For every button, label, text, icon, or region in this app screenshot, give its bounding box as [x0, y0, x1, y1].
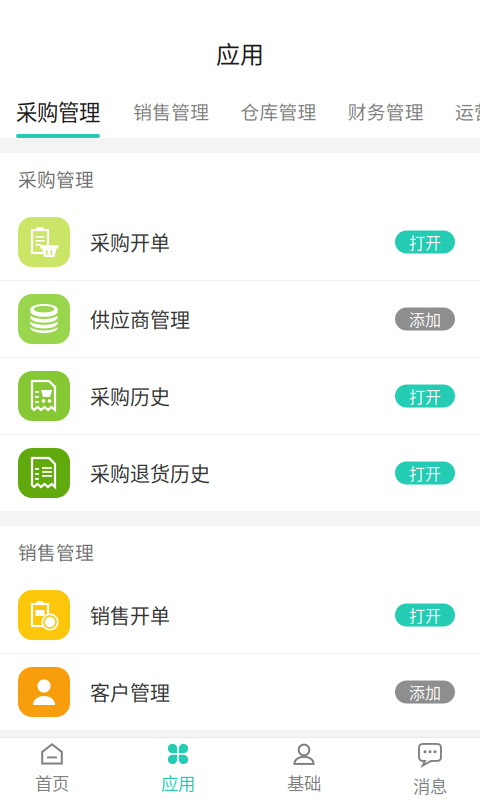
staticText: 采购管理	[16, 96, 100, 126]
staticText: 基础	[287, 770, 321, 795]
button[interactable]: 仓库管理	[238, 88, 346, 138]
staticText: 采购退货历史	[90, 458, 210, 487]
staticText: 供应商管理	[90, 304, 190, 333]
staticText: 财务管理	[348, 97, 424, 124]
staticText: 应用	[216, 36, 264, 70]
staticText: 应用	[161, 770, 195, 795]
staticText: 销售管理	[18, 538, 94, 565]
staticText: 打开	[409, 230, 441, 254]
button[interactable]: 采购开单	[0, 204, 480, 280]
staticText: 首页	[35, 770, 69, 795]
staticText: 消息	[413, 773, 447, 798]
button[interactable]: 采购历史	[0, 358, 480, 434]
button[interactable]: 销售开单	[0, 577, 480, 653]
button[interactable]: 销售管理	[131, 88, 238, 138]
staticText: 采购管理	[18, 165, 94, 192]
staticText: 销售管理	[133, 97, 209, 124]
button[interactable]: 采购退货历史	[0, 435, 480, 511]
staticText: 打开	[409, 384, 441, 408]
staticText: 采购开单	[90, 227, 170, 256]
staticText: 销售开单	[90, 600, 170, 629]
staticText: 运营管理	[455, 97, 480, 124]
staticText: 客户管理	[90, 677, 170, 706]
staticText: 仓库管理	[240, 97, 316, 124]
button[interactable]: 财务管理	[346, 88, 453, 138]
button[interactable]: 基础	[241, 738, 367, 800]
button[interactable]: 运营管理	[453, 88, 480, 138]
button[interactable]: 采购管理	[16, 88, 131, 138]
staticText: 打开	[409, 461, 441, 485]
staticText: 打开	[409, 603, 441, 627]
button[interactable]: 应用	[115, 738, 241, 800]
button[interactable]: 供应商管理	[0, 281, 480, 357]
staticText: 采购历史	[90, 381, 170, 410]
button[interactable]: 消息	[367, 738, 480, 800]
button[interactable]: 首页	[0, 738, 115, 800]
button[interactable]: 客户管理	[0, 654, 480, 730]
staticText: 添加	[409, 680, 441, 704]
staticText: 添加	[409, 307, 441, 331]
